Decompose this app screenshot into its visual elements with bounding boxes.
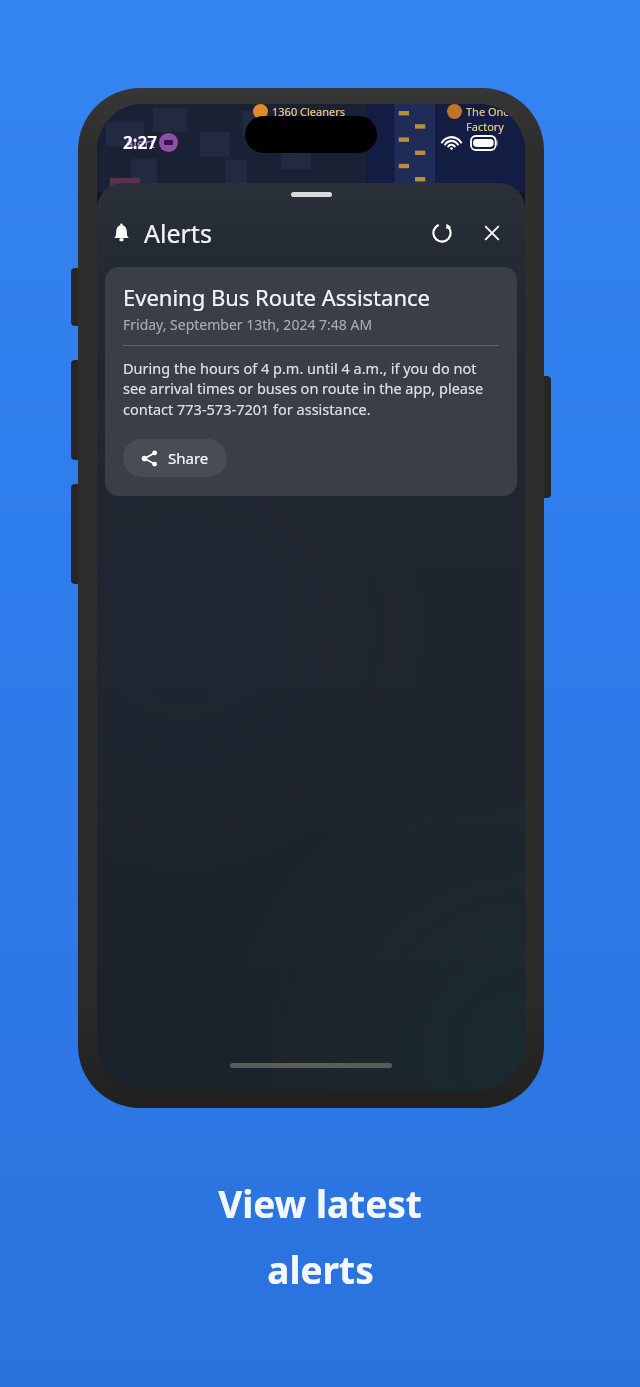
button[interactable]: Share xyxy=(123,439,227,477)
button[interactable]: Refresh xyxy=(421,212,463,254)
staticText: Friday, September 13th, 2024 7:48 AM xyxy=(123,315,373,334)
staticText: 2:27 xyxy=(123,131,157,154)
staticText: Evening Bus Route Assistance xyxy=(123,282,430,312)
staticText: 1360 Cleaners xyxy=(272,104,346,119)
button[interactable]: Alerts xyxy=(107,210,216,256)
staticText: Share xyxy=(168,448,209,468)
staticText: Alerts xyxy=(144,216,212,250)
staticText: Alert xyxy=(125,134,155,152)
staticText: Factory xyxy=(466,119,504,134)
staticText: View latest xyxy=(218,1178,422,1228)
button[interactable]: Close xyxy=(471,212,513,254)
staticText: During the hours of 4 p.m. until 4 a.m.,… xyxy=(123,358,499,420)
button[interactable]: Evening Bus Route Assistance xyxy=(105,267,517,496)
staticText: The Once xyxy=(466,104,515,119)
staticText: alerts xyxy=(267,1244,374,1294)
